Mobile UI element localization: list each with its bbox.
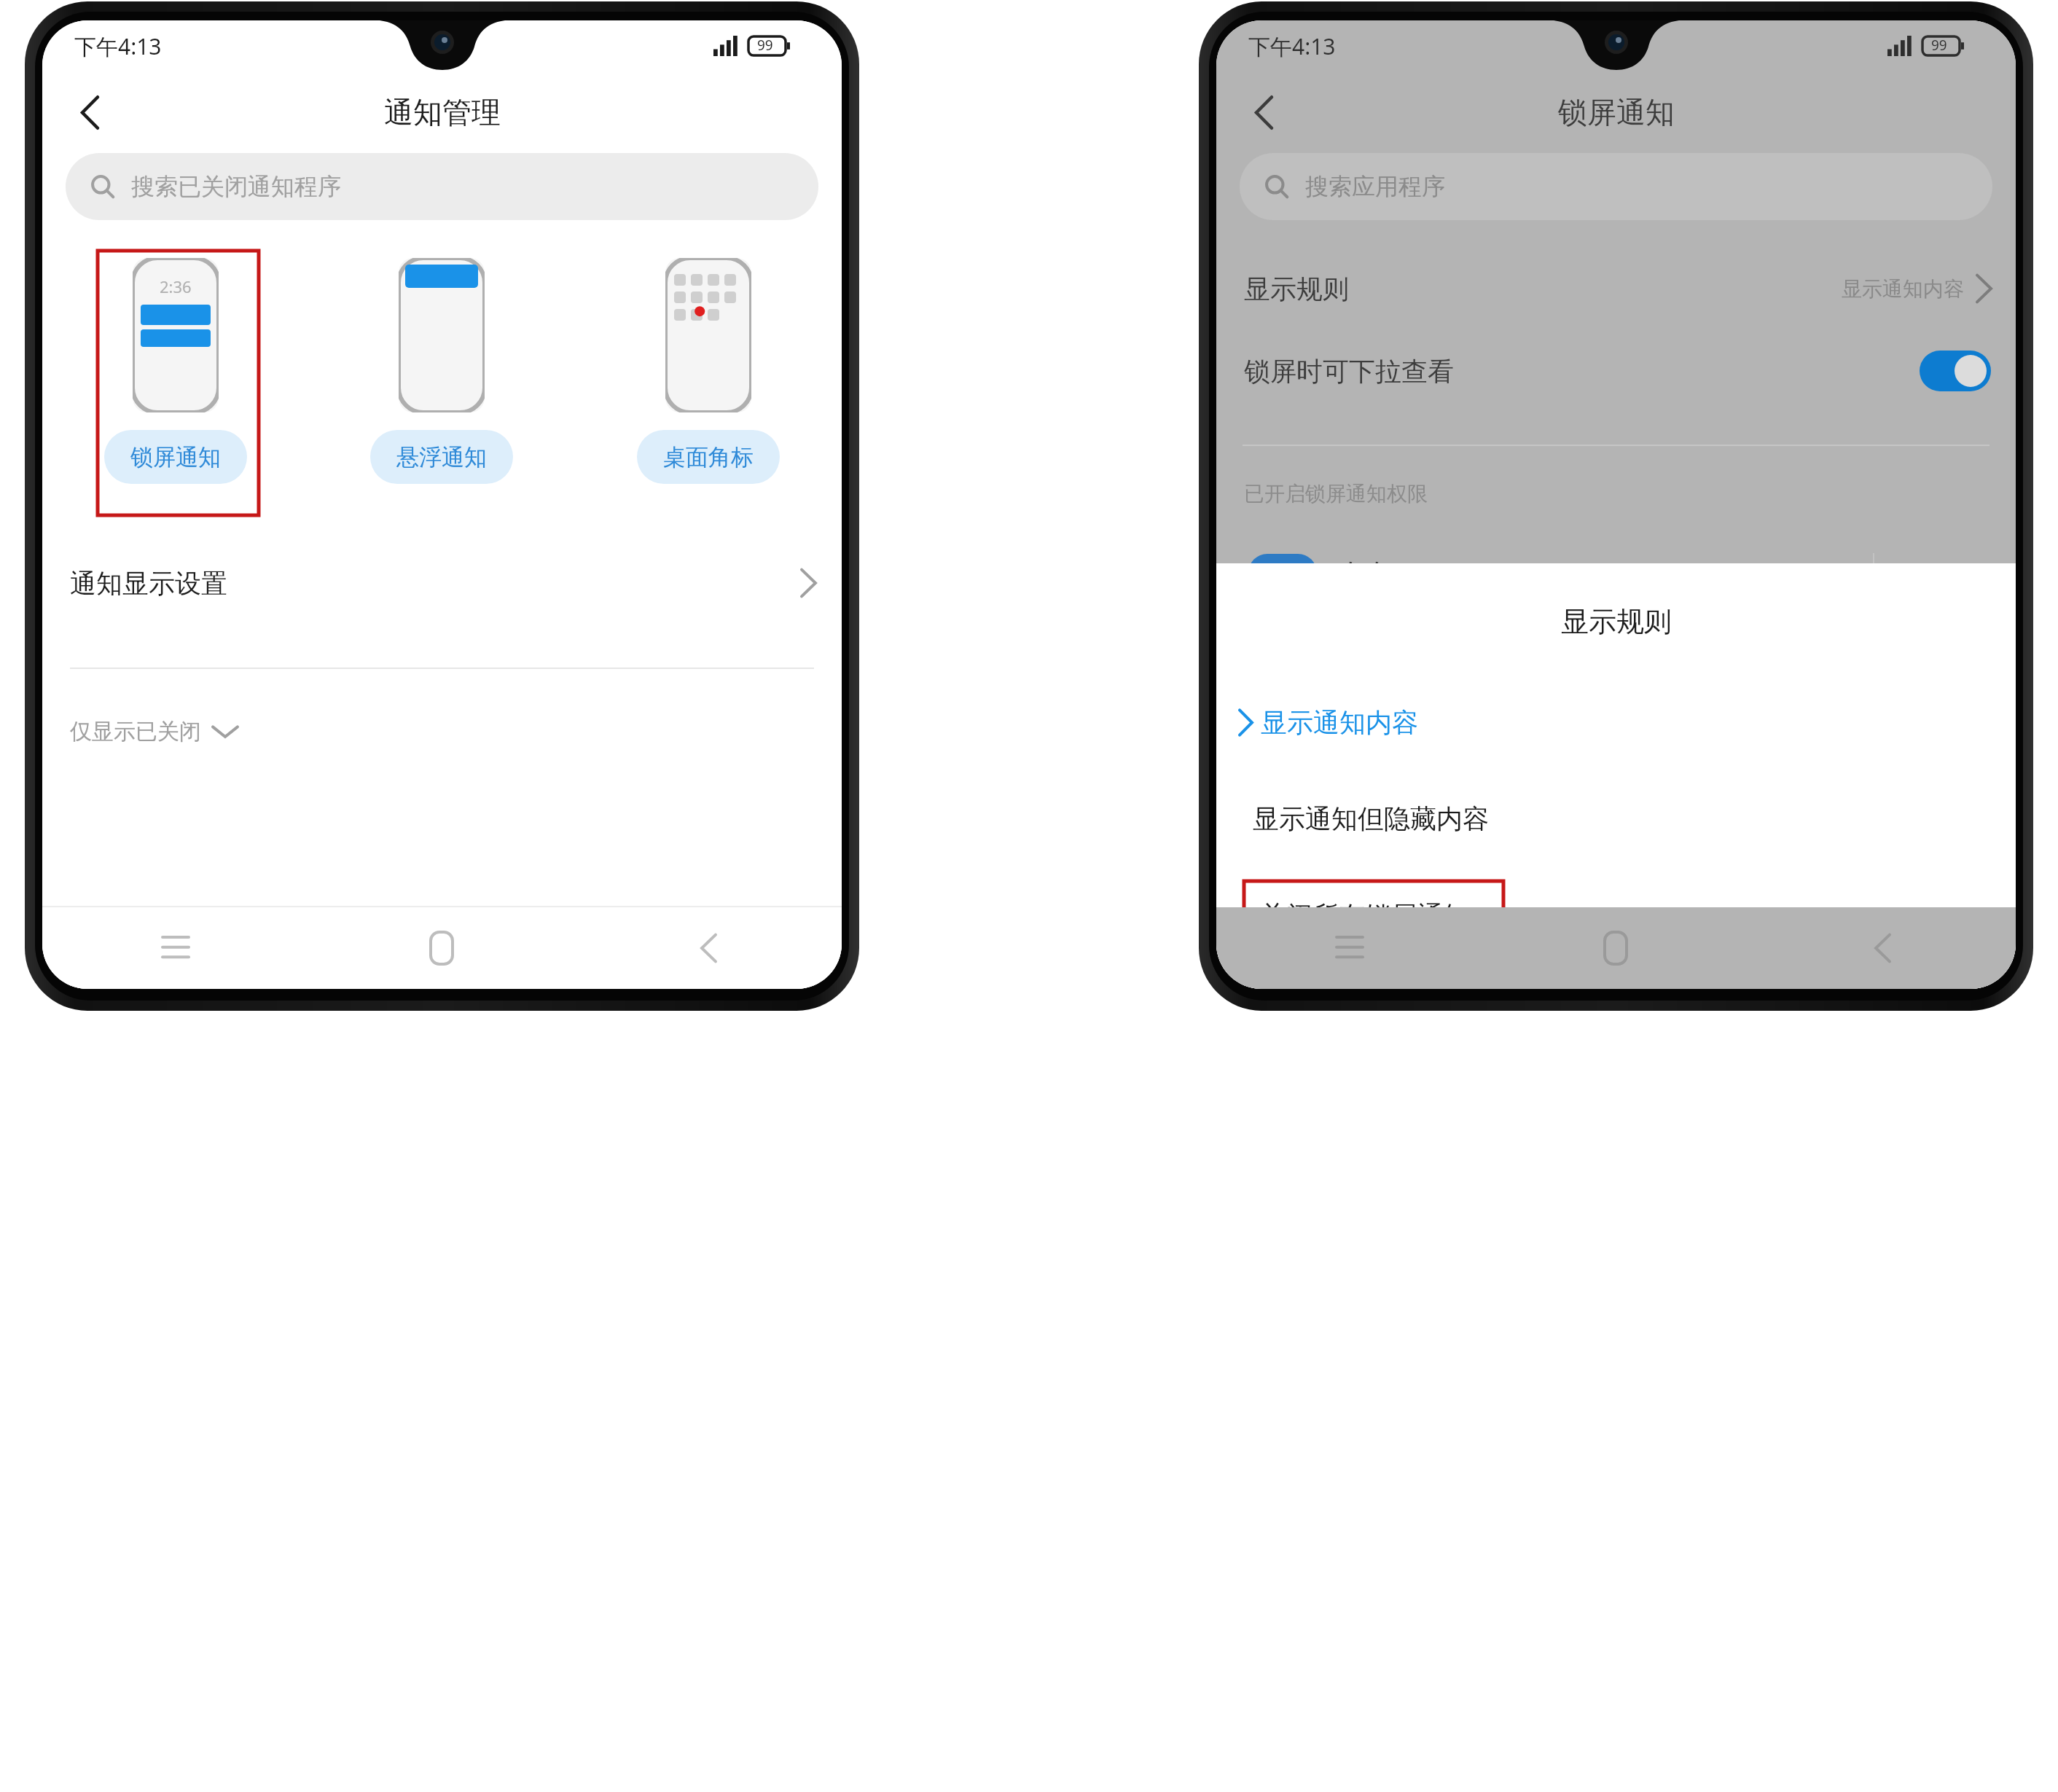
button[interactable]: 显示通知内容 [1216,689,2016,756]
button[interactable]: Recents [1216,907,1482,989]
button[interactable]: Back [1232,81,1295,144]
button[interactable]: 仅显示已关闭 [70,710,238,754]
staticText: 搜索应用程序 [1305,172,1445,201]
staticText: 仅显示已关闭 [70,718,201,746]
button[interactable]: 短信 [1216,649,2016,772]
staticText: 日历 [1345,910,1397,943]
button[interactable]: Back [575,907,842,989]
staticText: 悬浮通知 [396,443,487,472]
button[interactable]: 星期五 [1216,894,2016,989]
staticText: 显示规则 [1561,604,1672,639]
staticText: 桌面角标 [663,443,754,472]
button[interactable]: Recents [42,907,308,989]
staticText: 2:36 [160,275,192,297]
staticText: 锁屏通知 [1558,94,1675,130]
staticText: 通知管理 [384,94,501,130]
staticText: 搜索已关闭通知程序 [131,172,341,201]
button[interactable]: 搜索已关闭通知程序 [66,153,818,220]
staticText: 关闭所有锁屏通知 [1260,899,1470,932]
staticText: 已开启锁屏通知权限 [1244,481,1428,506]
button[interactable]: 米聊 [1216,772,2016,894]
button[interactable]: 悬浮通知 [308,248,575,525]
button[interactable]: 显示通知但隐藏内容 [1216,785,2016,852]
button[interactable]: 钉钉 [1216,527,2016,649]
button[interactable]: Back [58,81,121,144]
staticText: 锁屏时可下拉查看 [1244,355,1454,388]
button[interactable]: Back [1749,907,2016,989]
button[interactable]: 显示规则 [1216,254,2016,324]
staticText: 99 [757,36,773,55]
staticText: 99 [1931,36,1947,55]
button[interactable]: 搜索应用程序 [1240,153,1992,220]
staticText: 已开启锁屏通知 [1345,718,1482,743]
staticText: 下午4:13 [1248,31,1336,61]
button[interactable]: 2:36 [42,248,308,525]
staticText: 已开启锁屏通知 [1345,949,1482,974]
staticText: 通知显示设置 [70,567,227,600]
staticText: 显示通知但隐藏内容 [1253,802,1489,835]
staticText: 米聊 [1345,802,1397,834]
staticText: 下午4:13 [74,31,162,61]
button[interactable]: 通知显示设置 [42,541,842,625]
staticText: 显示通知内容 [1842,276,1964,302]
staticText: 钉钉 [1345,557,1397,590]
staticText: 显示通知内容 [1261,706,1418,739]
staticText: 短信 [1345,679,1397,712]
staticText: 显示规则 [1244,273,1349,305]
button[interactable]: 关闭所有锁屏通知 [1244,881,1503,950]
button[interactable]: Home [1482,907,1749,989]
button[interactable]: Home [308,907,575,989]
button[interactable] [1920,351,1991,391]
button[interactable]: 锁屏时可下拉查看 [1216,324,2016,418]
button[interactable]: 桌面角标 [575,248,842,525]
staticText: 锁屏通知 [130,443,221,472]
